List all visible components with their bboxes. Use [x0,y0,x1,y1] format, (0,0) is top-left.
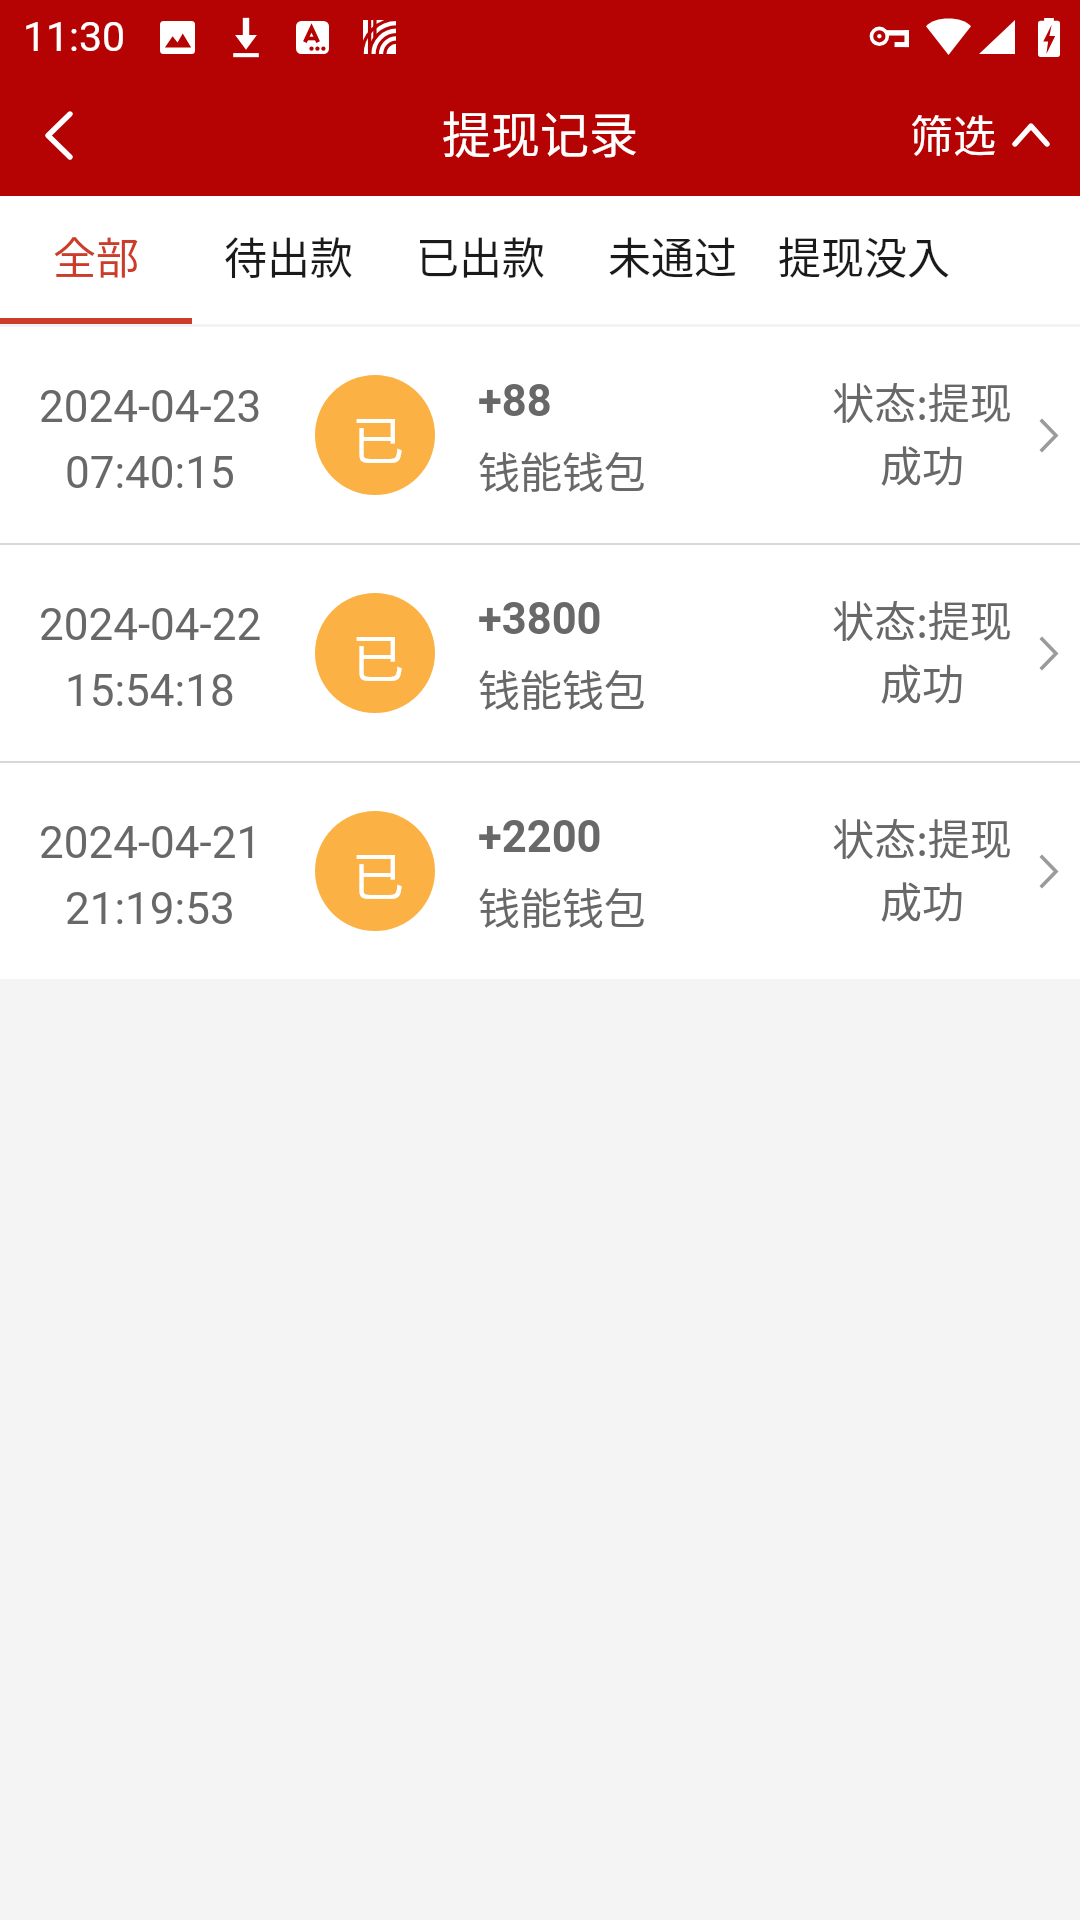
staticText: +2200 [478,812,602,863]
staticText: 钱能钱包 [478,657,647,718]
staticText: 21:19:53 [65,883,235,935]
button[interactable]: 已出款 [384,196,576,327]
staticText: 提现记录 [442,96,639,167]
staticText: 钱能钱包 [478,439,647,500]
staticText: 全部 [53,224,139,286]
staticText: 钱能钱包 [478,875,647,936]
staticText: 07:40:15 [65,447,235,499]
staticText: 已 [352,836,405,911]
button[interactable]: 提现没入 [768,196,960,327]
staticText: 11:30 [23,13,126,61]
staticText: 筛选 [910,102,996,164]
staticText: 已 [352,618,405,693]
staticText: 2024-04-22 [39,599,262,651]
button[interactable]: Back [0,74,118,196]
staticText: 未通过 [608,224,737,286]
button[interactable]: 全部 [0,196,192,327]
button[interactable]: 未通过 [576,196,768,327]
button[interactable]: 待出款 [192,196,384,327]
staticText: 2024-04-21 [39,817,262,869]
staticText: +3800 [478,594,602,645]
staticText: 已出款 [416,224,545,286]
staticText: 已 [352,400,405,475]
button[interactable]: 筛选 [910,74,1047,196]
button[interactable]: 2024-04-22 [0,545,1080,761]
button[interactable]: 2024-04-21 [0,763,1080,979]
staticText: 提现没入 [778,224,950,286]
button[interactable]: 2024-04-23 [0,327,1080,543]
staticText: +88 [478,376,552,427]
staticText: 15:54:18 [65,665,235,717]
staticText: 状态:提现 成功 [832,370,1012,494]
staticText: 待出款 [224,224,353,286]
staticText: 状态:提现 成功 [832,806,1012,930]
staticText: 2024-04-23 [39,381,262,433]
staticText: 状态:提现 成功 [832,588,1012,712]
